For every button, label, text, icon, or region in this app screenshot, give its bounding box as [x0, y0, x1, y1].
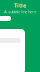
- staticText: A subtitle line here: [4, 9, 36, 14]
- staticText: Title: [14, 2, 26, 9]
